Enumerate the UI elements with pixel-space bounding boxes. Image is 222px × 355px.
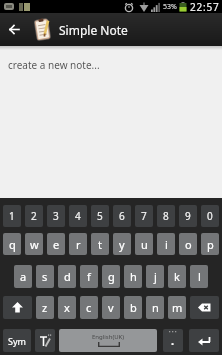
staticText: create a new note... <box>8 58 100 72</box>
staticText: z <box>42 300 48 315</box>
button[interactable]: f <box>80 265 98 288</box>
staticText: w <box>30 237 39 252</box>
button[interactable]: 8 <box>157 205 175 227</box>
staticText: 6 <box>119 209 125 223</box>
button[interactable]: j <box>146 265 164 288</box>
button[interactable]: s <box>36 265 54 288</box>
button[interactable]: r <box>69 233 87 255</box>
button[interactable]: b <box>124 296 142 319</box>
staticText: 4 <box>75 209 81 223</box>
staticText: c <box>86 300 92 315</box>
button[interactable]: d <box>58 265 76 288</box>
button[interactable] <box>35 329 55 352</box>
staticText: e <box>53 237 60 252</box>
staticText: 5 <box>97 209 103 223</box>
button[interactable]: create a new note... <box>0 46 222 198</box>
button[interactable]: u <box>135 233 153 255</box>
button[interactable]: 6 <box>113 205 131 227</box>
staticText: g <box>108 269 115 284</box>
staticText: x <box>64 300 70 315</box>
staticText: English(UK) <box>92 333 125 341</box>
button[interactable]: g <box>102 265 120 288</box>
staticText: u <box>141 237 148 252</box>
staticText: r <box>76 237 81 252</box>
staticText: i <box>165 237 168 252</box>
staticText: q <box>9 237 16 252</box>
button[interactable]: p <box>201 233 219 255</box>
button[interactable]: 2 <box>25 205 43 227</box>
staticText: . <box>171 333 175 348</box>
button[interactable]: z <box>36 296 54 319</box>
button[interactable] <box>3 296 32 319</box>
staticText: Simple Note <box>59 22 128 38</box>
staticText: f <box>87 269 91 284</box>
button[interactable]: x <box>58 296 76 319</box>
button[interactable]: m <box>168 296 186 319</box>
button[interactable]: h <box>124 265 142 288</box>
staticText: l <box>198 269 201 284</box>
button[interactable]: e <box>47 233 65 255</box>
staticText: a <box>20 269 27 284</box>
button[interactable] <box>0 13 28 46</box>
staticText: v <box>108 300 114 315</box>
staticText: s <box>42 269 48 284</box>
staticText: 0 <box>207 209 213 223</box>
staticText: 9 <box>185 209 191 223</box>
button[interactable]: i <box>157 233 175 255</box>
staticText: p <box>207 237 214 252</box>
button[interactable]: o <box>179 233 197 255</box>
button[interactable]: 3 <box>47 205 65 227</box>
button[interactable]: 7 <box>135 205 153 227</box>
staticText: n <box>152 300 159 315</box>
staticText: d <box>64 269 71 284</box>
button[interactable]: a <box>14 265 32 288</box>
button[interactable]: 9 <box>179 205 197 227</box>
staticText: m <box>172 300 183 315</box>
button[interactable]: 5 <box>91 205 109 227</box>
button[interactable]: c <box>80 296 98 319</box>
staticText: k <box>174 269 180 284</box>
button[interactable]: n <box>146 296 164 319</box>
staticText: 8 <box>163 209 169 223</box>
staticText: Sym <box>8 335 26 347</box>
button[interactable]: v <box>102 296 120 319</box>
staticText: o <box>185 237 192 252</box>
button[interactable]: English(UK) <box>59 329 157 352</box>
staticText: 22:57 <box>190 0 220 13</box>
button[interactable]: t <box>91 233 109 255</box>
button[interactable]: w <box>25 233 43 255</box>
button[interactable] <box>189 329 219 352</box>
button[interactable]: q <box>3 233 21 255</box>
button[interactable] <box>190 296 219 319</box>
staticText: j <box>154 269 157 284</box>
button[interactable]: . <box>163 329 183 352</box>
button[interactable]: y <box>113 233 131 255</box>
staticText: t <box>98 237 102 252</box>
staticText: h <box>130 269 137 284</box>
staticText: 3 <box>53 209 59 223</box>
staticText: 2 <box>31 209 37 223</box>
button[interactable]: Sym <box>3 329 31 352</box>
button[interactable]: 4 <box>69 205 87 227</box>
staticText: y <box>119 237 125 252</box>
button[interactable]: 0 <box>201 205 219 227</box>
staticText: 7 <box>141 209 147 223</box>
staticText: b <box>130 300 137 315</box>
staticText: 53% <box>163 2 177 12</box>
button[interactable]: 1 <box>3 205 21 227</box>
button[interactable]: k <box>168 265 186 288</box>
button[interactable]: l <box>190 265 208 288</box>
staticText: 1 <box>9 209 15 223</box>
